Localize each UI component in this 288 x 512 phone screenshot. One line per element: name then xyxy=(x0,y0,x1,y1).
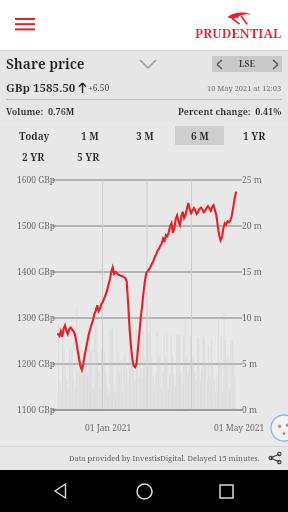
button[interactable]: 5 YR xyxy=(64,147,113,166)
staticText: 5 m xyxy=(242,358,257,370)
staticText: 3 M xyxy=(136,129,154,143)
staticText: 1300 GBp xyxy=(17,312,56,324)
button[interactable]: Expand xyxy=(135,54,161,74)
staticText: 15 m xyxy=(242,266,262,278)
staticText: 10 m xyxy=(242,312,262,324)
button[interactable]: Prudential home xyxy=(195,9,282,42)
button[interactable]: 6 M xyxy=(175,126,224,145)
staticText: 1100 GBp xyxy=(17,404,56,416)
staticText: 25 m xyxy=(242,174,262,186)
staticText: 5 YR xyxy=(77,150,100,164)
staticText: 0 m xyxy=(242,404,257,416)
staticText: Today xyxy=(19,129,50,143)
staticText: 1 YR xyxy=(243,129,266,143)
staticText: 1400 GBp xyxy=(17,266,56,278)
button[interactable]: Home xyxy=(124,471,164,511)
button[interactable]: Back xyxy=(42,471,82,511)
staticText: GBp 1585.50 xyxy=(6,80,76,96)
button[interactable]: 1 YR xyxy=(230,126,279,145)
staticText: 01 May 2021 xyxy=(214,422,265,434)
button[interactable]: 2 YR xyxy=(9,147,58,166)
button[interactable]: LSE xyxy=(226,56,268,72)
button[interactable]: Previous exchange xyxy=(212,56,226,72)
button[interactable]: Recents xyxy=(206,471,246,511)
button[interactable]: Menu xyxy=(8,8,42,42)
staticText: 1 M xyxy=(81,129,99,143)
staticText: +6.50 xyxy=(88,82,110,94)
staticText: 01 Jan 2021 xyxy=(85,422,132,434)
staticText: 10 May 2021 at 12:03 xyxy=(207,83,282,93)
staticText: 20 m xyxy=(242,220,262,232)
staticText: 1600 GBp xyxy=(17,174,56,186)
staticText: 1200 GBp xyxy=(17,358,56,370)
staticText: PRUDENTIAL xyxy=(195,25,282,42)
staticText: 1500 GBp xyxy=(17,220,56,232)
button[interactable]: 3 M xyxy=(120,126,169,145)
staticText: 6 M xyxy=(191,129,209,143)
staticText: Volume: 0.76M xyxy=(6,105,75,117)
staticText: Percent change: 0.41% xyxy=(178,105,282,117)
button[interactable]: Next exchange xyxy=(268,56,282,72)
button[interactable]: Share xyxy=(266,449,284,467)
staticText: 2 YR xyxy=(22,150,45,164)
button[interactable]: Today xyxy=(9,126,59,145)
staticText: Data provided by InvestisDigital. Delaye… xyxy=(69,453,260,463)
staticText: LSE xyxy=(239,58,256,70)
button[interactable]: 1 M xyxy=(65,126,114,145)
staticText: Share price xyxy=(6,55,85,73)
